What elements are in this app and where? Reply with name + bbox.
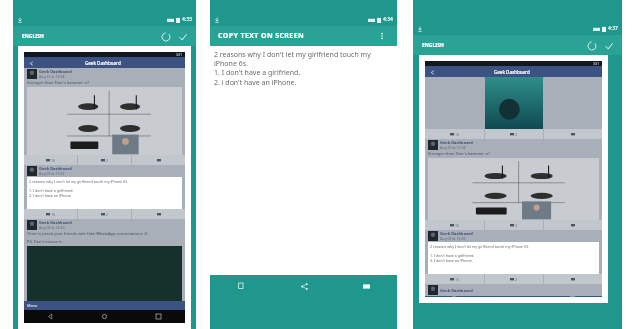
staticText: 2 reasons why I don't let my girlfriend … (214, 50, 393, 68)
staticText: 2 (515, 132, 518, 137)
button[interactable]: Comment (78, 155, 131, 165)
staticText: Geek Dashboard (440, 288, 473, 293)
staticText: Geek Dashboard (494, 69, 530, 75)
staticText: 1. I don't have a girlfriend. (214, 68, 301, 78)
button[interactable]: Home (77, 310, 131, 323)
staticText: 2 reasons why I don't let my girlfriend … (430, 244, 530, 249)
button[interactable]: Share (544, 274, 602, 284)
staticText: Geek Dashboard (39, 166, 72, 171)
button[interactable]: Comment (78, 209, 131, 219)
button[interactable]: Like (425, 220, 484, 230)
staticText: COPY TEXT ON SCREEN (218, 31, 305, 41)
button[interactable]: Like (425, 274, 484, 284)
staticText: 2 (515, 223, 518, 228)
staticText: 2. I don't have an iPhone. (430, 258, 473, 263)
staticText: 3:31 (176, 53, 182, 57)
staticText: 1. I don't have a girlfriend. (430, 253, 475, 258)
button[interactable]: Copy (210, 275, 273, 297)
button[interactable]: Done (176, 30, 189, 43)
button[interactable]: Comment (485, 129, 543, 139)
staticText: Aug 09 at 15:02 (39, 171, 66, 176)
staticText: 4:33 (182, 16, 192, 23)
staticText: Geek Dashboard (440, 231, 473, 236)
button[interactable]: Menu (24, 301, 185, 310)
staticText: Aug 09 at 15:02 (440, 236, 467, 241)
button[interactable]: Save (335, 275, 397, 297)
staticText: 16 (51, 158, 56, 163)
staticText: 2 reasons why I don't let my girlfriend … (29, 179, 129, 184)
button[interactable]: Share (544, 220, 602, 230)
button[interactable]: COPY TEXT ON SCREEN (210, 26, 397, 46)
staticText: ENGLISH (22, 33, 44, 40)
button[interactable]: More options (375, 29, 389, 43)
staticText: Aug 10 at 15:04 (39, 74, 66, 79)
staticText: Aug 08 at 14:30 (39, 225, 66, 230)
button[interactable]: Back (428, 68, 436, 76)
staticText: Geek Dashboard (39, 220, 72, 225)
button[interactable]: Share (132, 155, 185, 165)
staticText: 2 (515, 277, 518, 282)
button[interactable]: Like (24, 209, 77, 219)
button[interactable]: Recents (131, 310, 185, 323)
staticText: 2. I don't have an iPhone. (29, 193, 72, 198)
button[interactable]: Share (132, 209, 185, 219)
staticText: Menu (27, 303, 38, 308)
staticText: 16 (51, 212, 56, 217)
button[interactable]: Share (544, 129, 602, 139)
staticText: 1. I don't have a girlfriend. (29, 188, 74, 193)
staticText: Aug 10 at 15:04 (440, 145, 467, 150)
staticText: Time to prank your friends with fake Wha… (27, 231, 148, 236)
staticText: PS: Don't misuse it. (27, 239, 63, 244)
staticText: 16 (455, 223, 460, 228)
staticText: Geek Dashboard (39, 69, 72, 74)
staticText: 16 (455, 132, 460, 137)
button[interactable]: Back (24, 310, 77, 323)
staticText: 2 (106, 158, 109, 163)
button[interactable]: Done (602, 39, 615, 52)
button[interactable]: Share (273, 275, 335, 297)
button[interactable]: Like (24, 155, 77, 165)
staticText: 4:34 (383, 16, 393, 23)
staticText: 4:37 (608, 25, 618, 32)
button[interactable]: Back (27, 59, 35, 67)
button[interactable]: ENGLISH (20, 31, 46, 42)
button[interactable]: Menu (425, 296, 602, 297)
staticText: 16 (455, 277, 460, 282)
staticText: Stronger than Thor's hammer :v? (428, 151, 490, 156)
staticText: ENGLISH (422, 42, 444, 49)
staticText: 2 (106, 212, 109, 217)
staticText: 3:31 (593, 62, 599, 66)
button[interactable]: ENGLISH (420, 40, 446, 51)
staticText: Stronger than Thor's hammer :v? (27, 80, 89, 85)
button[interactable]: Comment (485, 220, 543, 230)
button[interactable]: Like (425, 129, 484, 139)
button[interactable]: Comment (485, 274, 543, 284)
staticText: Geek Dashboard (440, 140, 473, 145)
staticText: Geek Dashboard (85, 60, 121, 66)
button[interactable]: Refresh (585, 39, 598, 52)
button[interactable]: Refresh (159, 30, 172, 43)
staticText: 2. i don't have an iPhone. (214, 78, 297, 88)
